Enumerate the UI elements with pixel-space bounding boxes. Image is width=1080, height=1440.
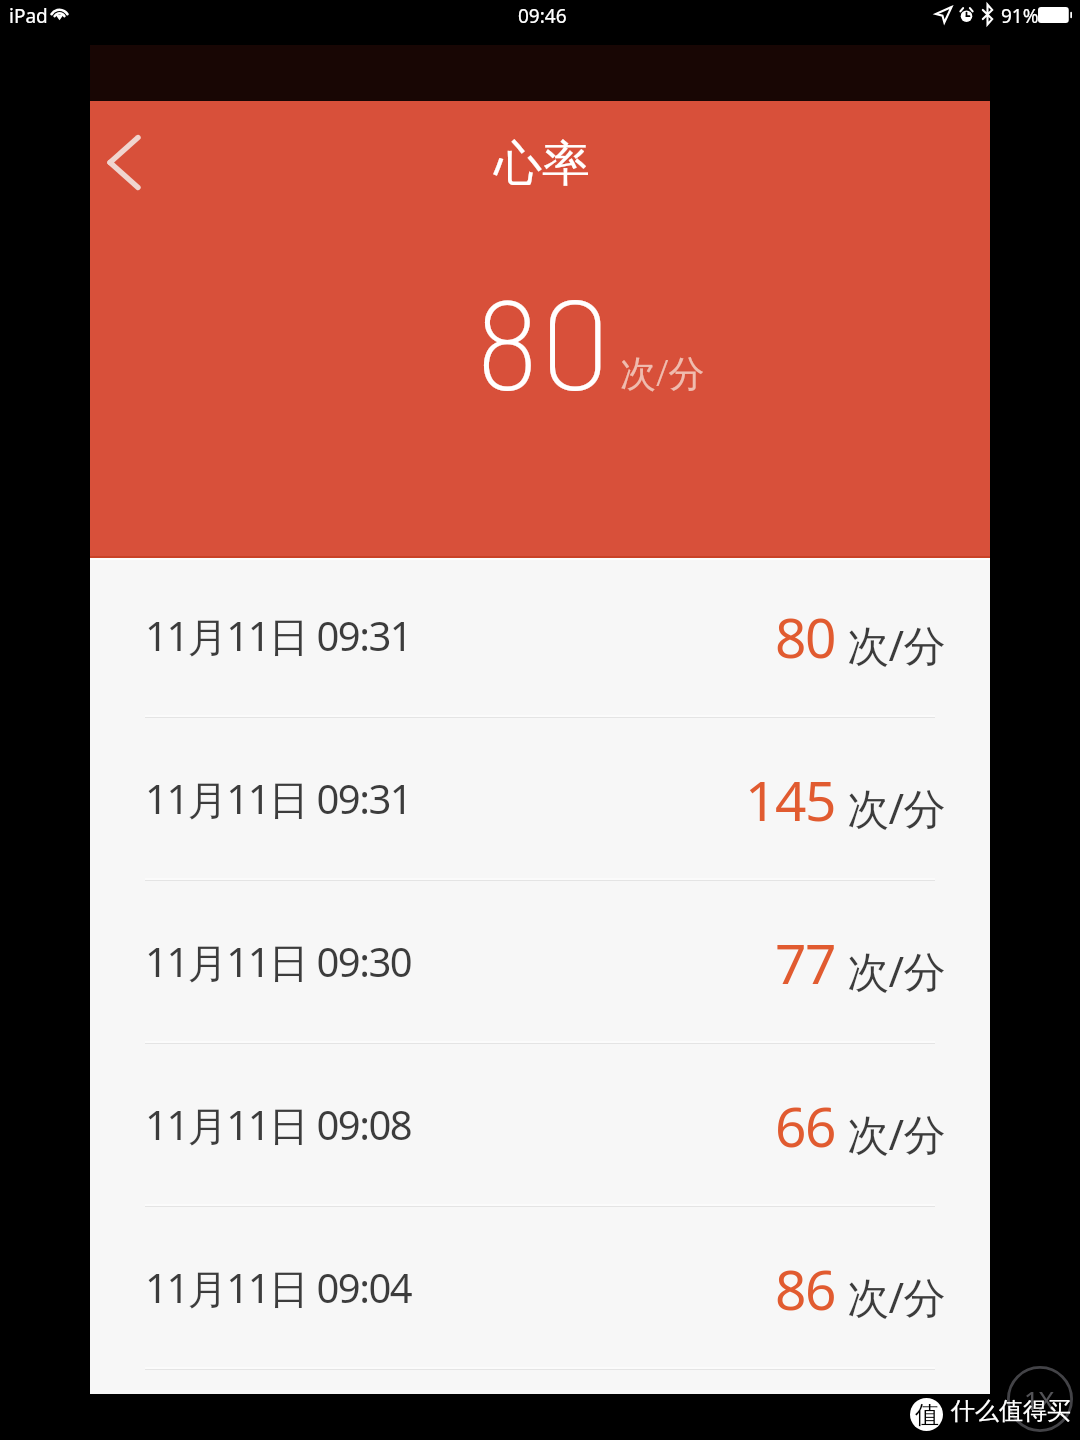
staticText: 80 xyxy=(775,599,835,674)
staticText: 91% xyxy=(1001,3,1039,29)
staticText: iPad xyxy=(9,3,48,29)
staticText: 145 xyxy=(745,762,835,837)
staticText: 11月11日 09:04 xyxy=(145,1260,412,1315)
staticText: 心率 xyxy=(494,134,590,194)
staticText: 次/分 xyxy=(847,779,946,836)
staticText: 次/分 xyxy=(847,942,946,999)
staticText: 值 xyxy=(915,1400,939,1430)
staticText: 次/分 xyxy=(847,616,946,673)
button[interactable]: 11月11日 09:30 xyxy=(90,882,990,1045)
staticText: 77 xyxy=(775,925,835,1000)
button[interactable]: 11月11日 09:04 xyxy=(90,1208,990,1371)
staticText: 次/分 xyxy=(847,1105,946,1162)
staticText: 次/分 xyxy=(847,1268,946,1325)
button[interactable]: 11月11日 09:31 xyxy=(90,719,990,882)
staticText: 09:46 xyxy=(518,3,567,29)
staticText: 11月11日 09:30 xyxy=(145,934,412,989)
staticText: 次/分 xyxy=(620,348,705,397)
staticText: 1X xyxy=(1024,1382,1055,1417)
staticText: 11月11日 09:31 xyxy=(145,771,412,826)
staticText: 66 xyxy=(775,1088,835,1163)
button[interactable]: 11月11日 09:31 xyxy=(90,556,990,719)
staticText: 86 xyxy=(775,1251,835,1326)
staticText: 11月11日 09:31 xyxy=(145,608,412,663)
button[interactable]: 11月11日 09:08 xyxy=(90,1045,990,1208)
staticText: 什么值得买 xyxy=(951,1396,1071,1426)
staticText: 80 xyxy=(475,264,611,415)
button[interactable]: Back xyxy=(90,109,186,219)
staticText: 11月11日 09:08 xyxy=(145,1097,412,1152)
